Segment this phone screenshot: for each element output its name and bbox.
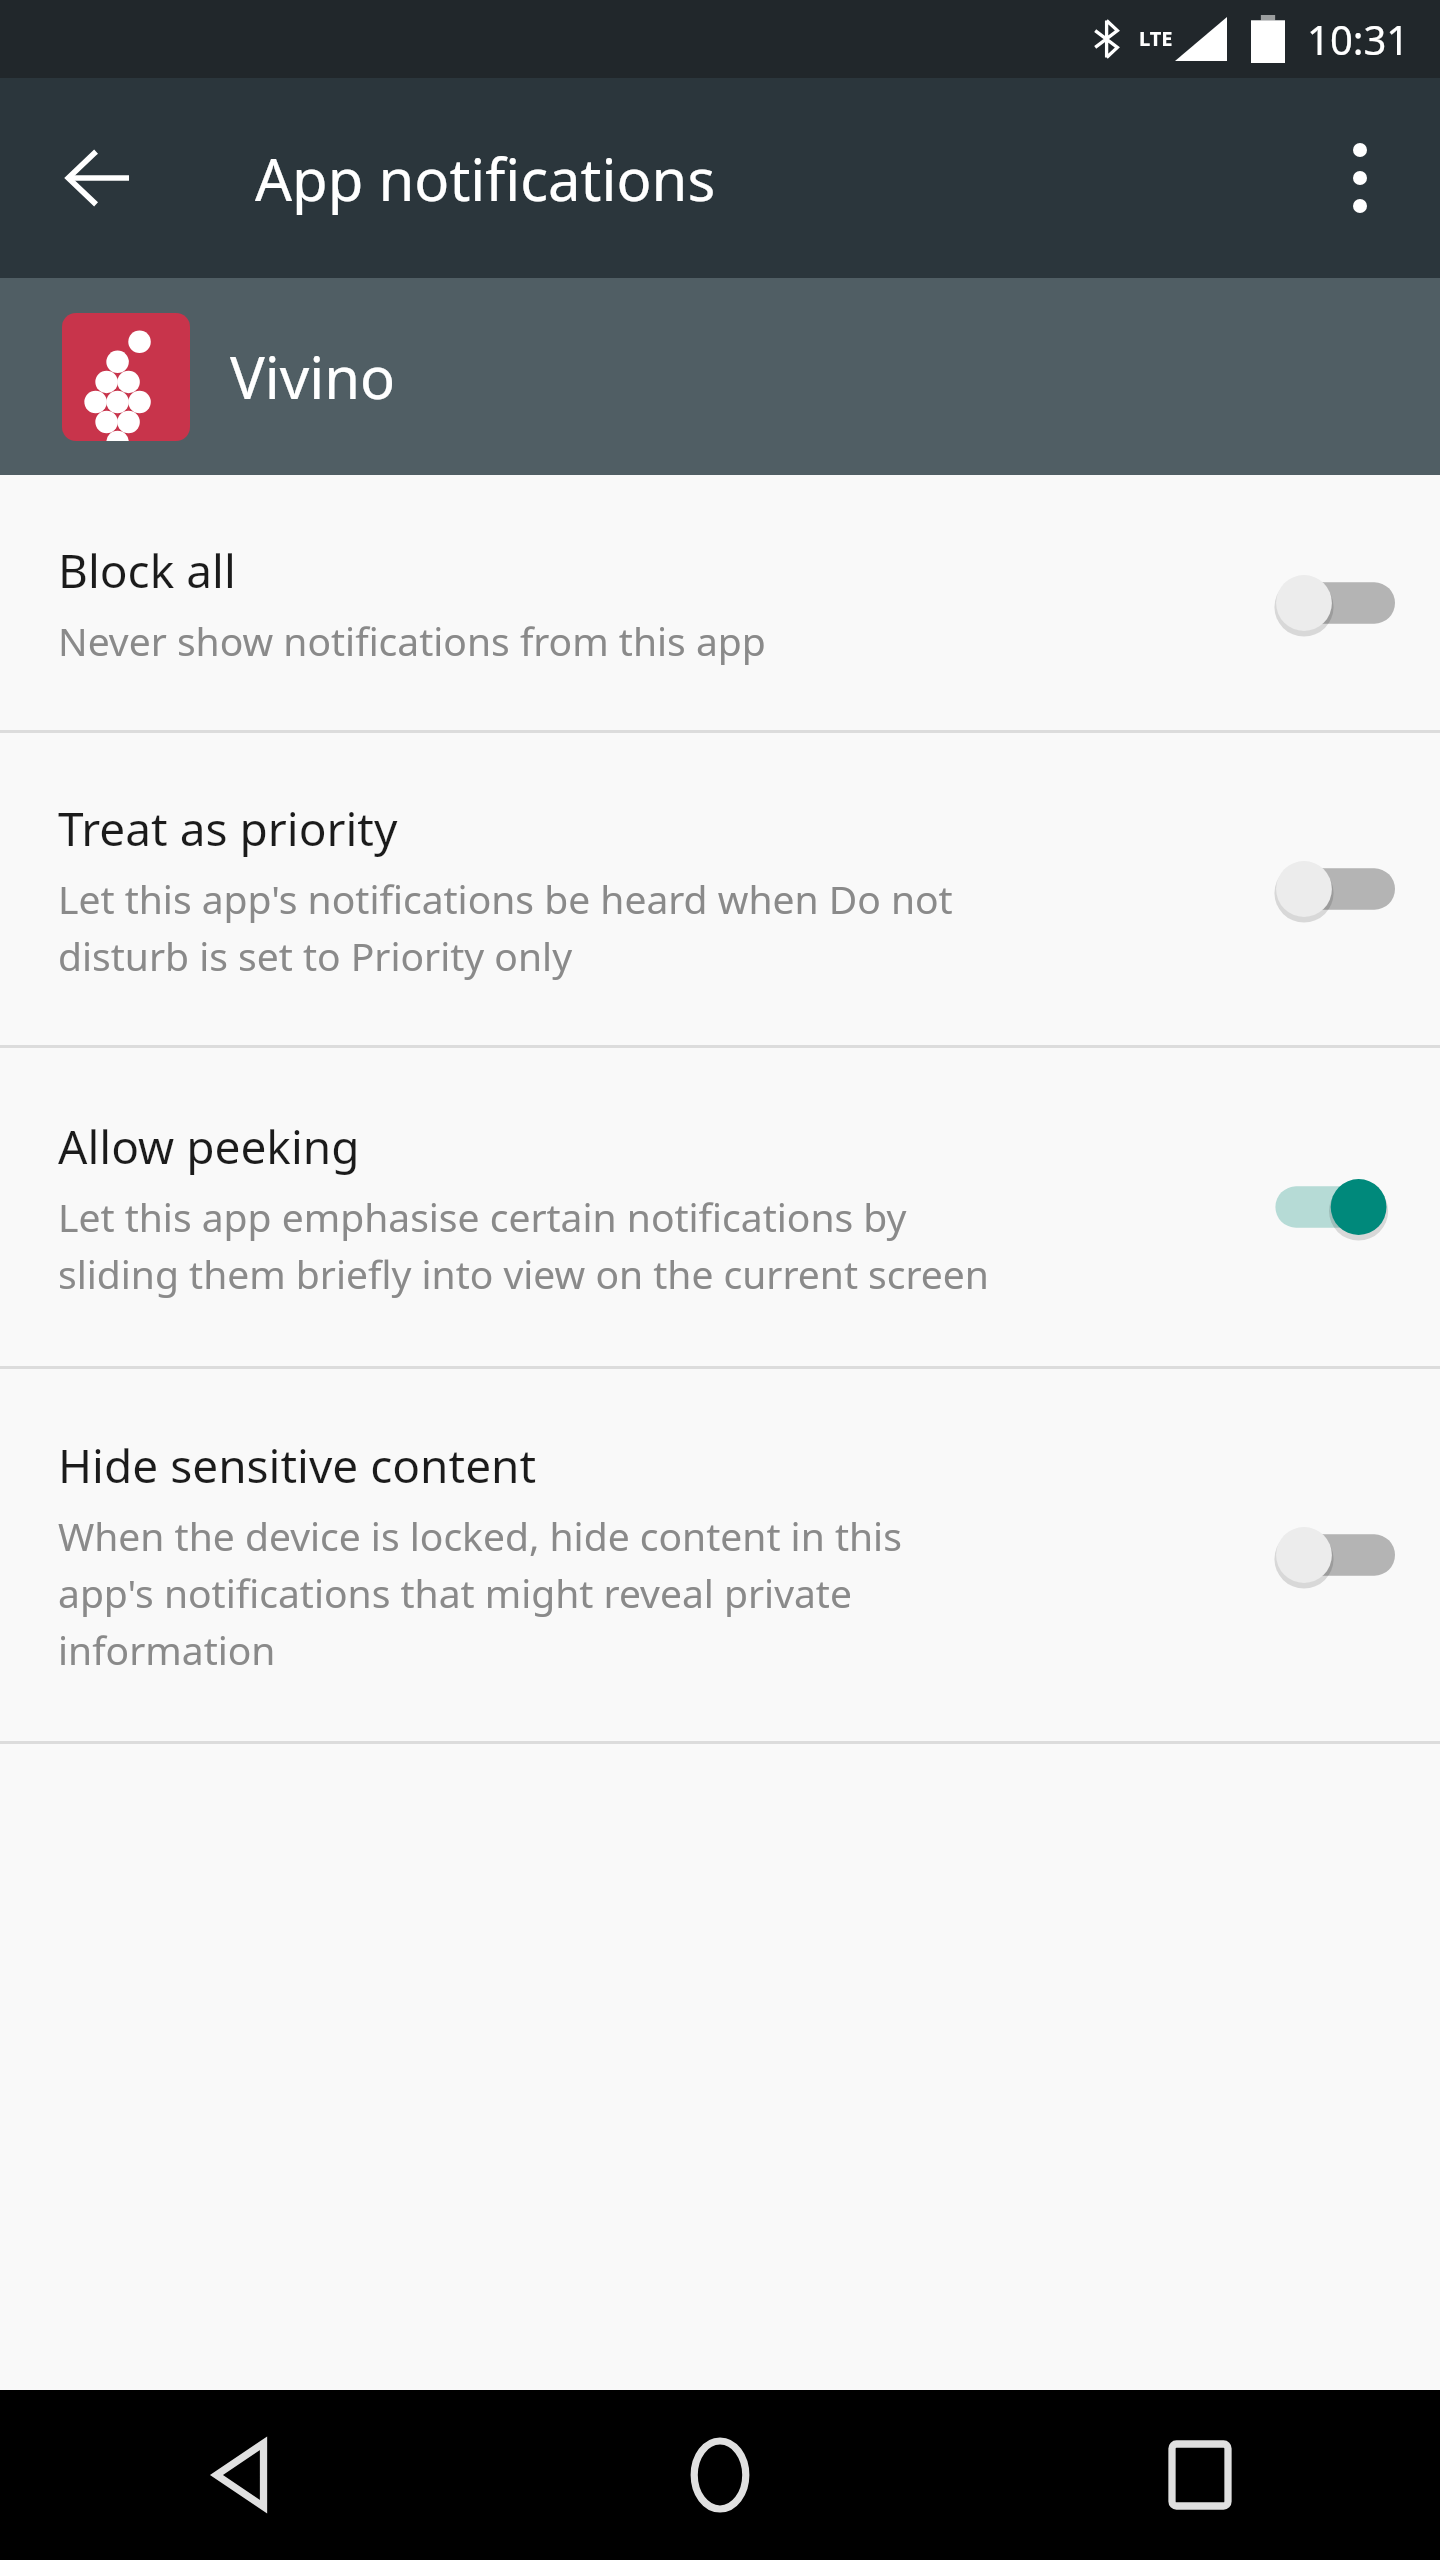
button[interactable]: Block all (1220, 475, 1440, 730)
staticText: Treat as priority (58, 797, 398, 860)
staticText: App notifications (255, 139, 716, 218)
staticText: Vivino (230, 337, 396, 416)
staticText: 10:31 (1307, 12, 1410, 66)
staticText: Block all (58, 539, 236, 602)
staticText: Allow peeking (58, 1115, 360, 1178)
button[interactable]: Back (0, 2390, 480, 2560)
button[interactable]: Vivino (0, 278, 1440, 475)
staticText: Never show notifications from this app (58, 614, 766, 667)
button[interactable]: Treat as priority (1220, 733, 1440, 1045)
button[interactable]: Allow peeking (0, 1048, 1440, 1366)
staticText: Hide sensitive content (58, 1434, 537, 1497)
button[interactable]: Hide sensitive content (1220, 1369, 1440, 1741)
button[interactable]: Treat as priority (0, 733, 1440, 1045)
staticText: Let this app emphasise certain notificat… (58, 1190, 989, 1300)
button[interactable]: Allow peeking (1220, 1048, 1440, 1366)
button[interactable]: Recent apps (960, 2390, 1440, 2560)
button[interactable]: More options (1290, 108, 1430, 248)
staticText: LTE (1139, 25, 1173, 52)
button[interactable]: Hide sensitive content (0, 1369, 1440, 1741)
button[interactable]: Back (28, 108, 168, 248)
button[interactable]: Home (480, 2390, 960, 2560)
staticText: When the device is locked, hide content … (58, 1509, 902, 1676)
staticText: Let this app's notifications be heard wh… (58, 872, 953, 982)
button[interactable]: Block all (0, 475, 1440, 730)
